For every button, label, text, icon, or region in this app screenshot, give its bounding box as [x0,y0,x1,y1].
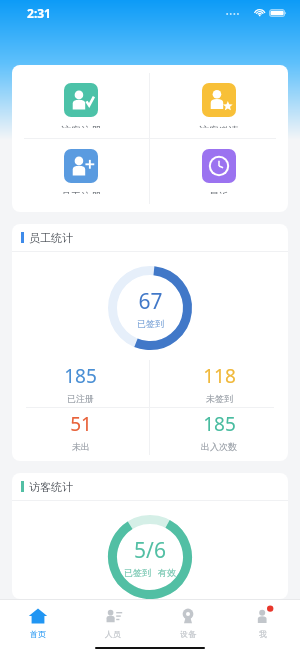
button[interactable]: 最近 [150,139,288,204]
staticText: 67 [138,287,163,316]
staticText: 设备 [180,629,196,639]
button[interactable]: 员工注册 [12,139,149,204]
button[interactable]: 51 [12,408,149,455]
button[interactable]: 人员 [75,600,150,639]
staticText: 51 [70,411,92,437]
button[interactable]: 访客邀请 [150,73,288,138]
staticText: 员工注册 [61,190,101,194]
staticText: 185 [203,411,236,437]
staticText: 有效 [158,567,176,578]
staticText: 人员 [105,629,121,639]
button[interactable]: 首页 [0,600,75,639]
staticText: 首页 [30,629,46,639]
staticText: 我 [259,629,267,639]
staticText: 未出 [72,441,90,452]
button[interactable]: 我 [225,600,300,639]
staticText: 2:31 [27,5,51,21]
staticText: 员工统计 [29,231,73,245]
staticText: 未签到 [206,393,233,404]
staticText: 已注册 [67,393,94,404]
staticText: 访客邀请 [199,124,239,128]
button[interactable]: 访客注册 [12,73,149,138]
staticText: 已签到 [124,567,151,578]
button[interactable]: 185 [12,360,149,407]
staticText: 118 [203,363,236,389]
staticText: 访客注册 [61,124,101,128]
staticText: 5/6 [134,536,166,565]
staticText: 出入次数 [201,441,237,452]
staticText: 185 [64,363,97,389]
button[interactable]: 118 [150,360,288,407]
staticText: 已签到 [137,318,164,329]
staticText: 访客统计 [29,480,73,494]
staticText: 最近 [209,190,229,194]
button[interactable]: 185 [150,408,288,455]
button[interactable]: 设备 [150,600,225,639]
